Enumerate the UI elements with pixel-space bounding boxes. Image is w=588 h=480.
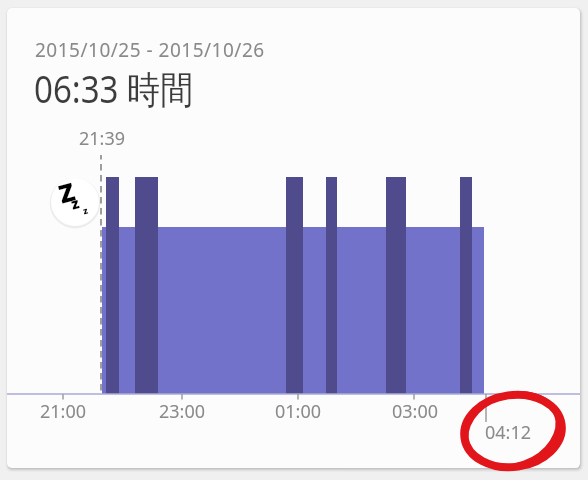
staticText: 21:00 — [40, 399, 87, 424]
button[interactable] — [7, 8, 580, 468]
staticText: 2015/10/25 - 2015/10/26 — [35, 37, 265, 63]
staticText: 03:00 — [392, 399, 439, 424]
staticText: 04:12 — [485, 420, 532, 445]
staticText: z — [81, 204, 89, 216]
staticText: 01:00 — [275, 399, 322, 424]
staticText: z — [68, 192, 81, 214]
staticText: Z — [55, 173, 79, 210]
staticText: 21:39 — [79, 126, 126, 151]
staticText: 06:33 時間 — [34, 62, 194, 114]
staticText: 23:00 — [159, 399, 206, 424]
